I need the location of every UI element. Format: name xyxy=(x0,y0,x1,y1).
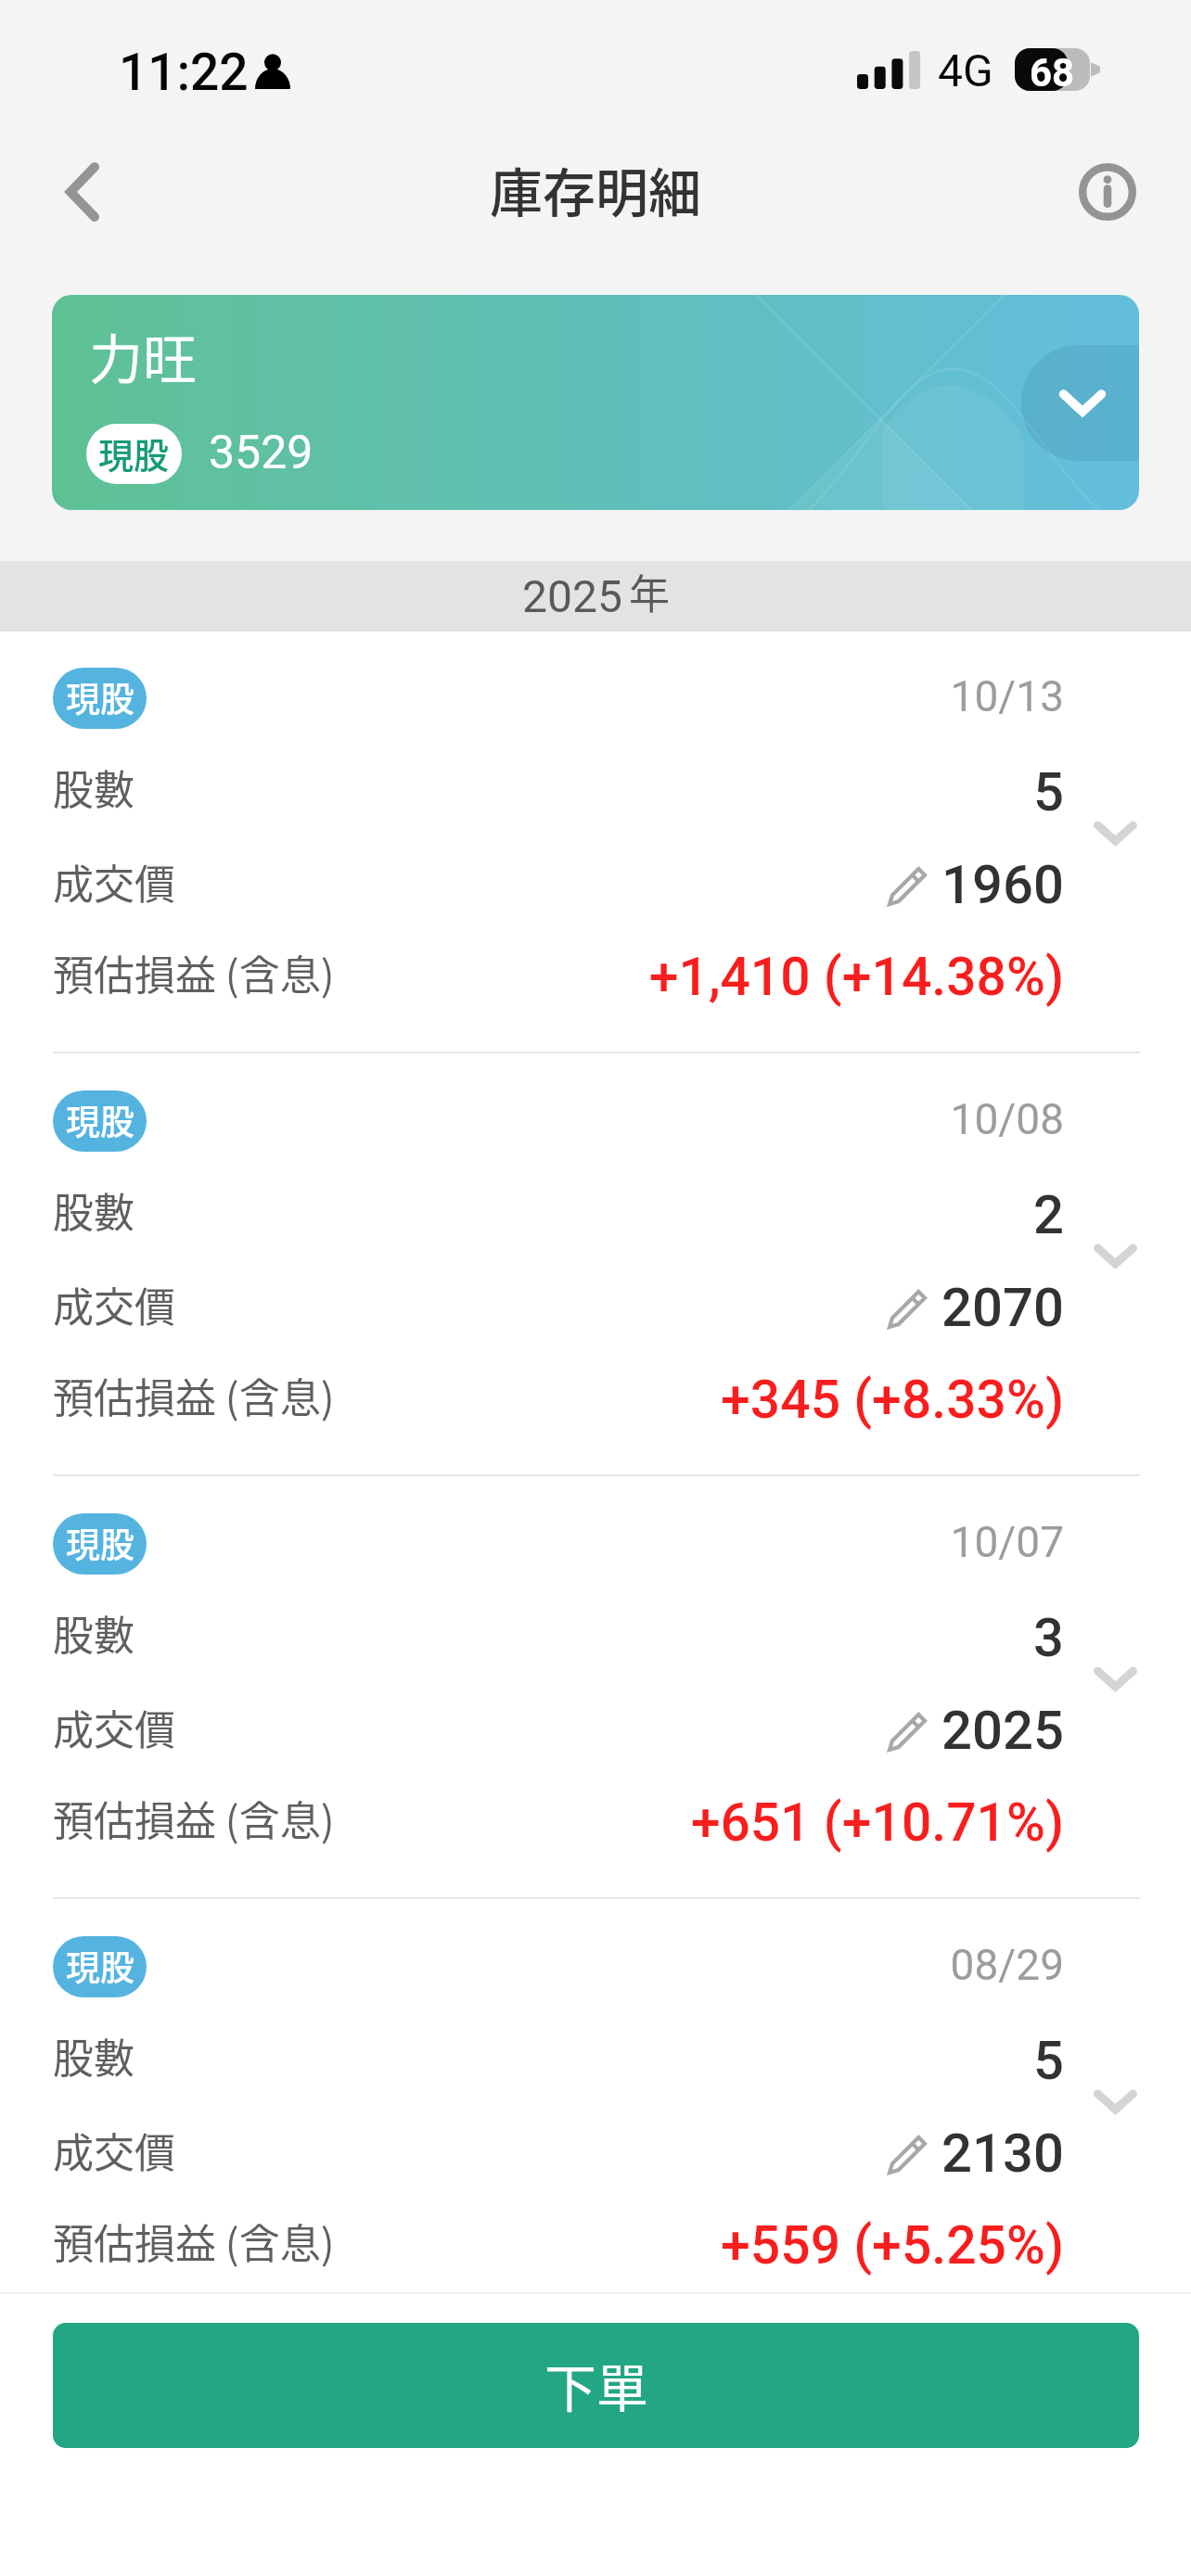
staticText: 成交價 xyxy=(53,1275,175,1334)
staticText: 11:22 xyxy=(119,43,249,102)
staticText: 預估損益 (含息) xyxy=(53,943,335,1002)
staticText: 股數 xyxy=(53,1603,134,1663)
button[interactable]: Expand xyxy=(1021,345,1139,461)
staticText: 3 xyxy=(649,1606,1064,1669)
button[interactable]: 現股 xyxy=(53,1936,147,1997)
staticText: 2070 xyxy=(941,1276,1064,1339)
staticText: 10/13 xyxy=(649,671,1064,721)
staticText: 2025 xyxy=(522,570,622,622)
staticText: 力旺 xyxy=(89,317,198,395)
staticText: 股數 xyxy=(53,2026,134,2085)
staticText: +651 (+10.71%) xyxy=(519,1792,1064,1854)
button[interactable]: Expand record xyxy=(1078,796,1152,870)
staticText: 5 xyxy=(649,760,1064,823)
staticText: 股數 xyxy=(53,758,134,817)
staticText: 08/29 xyxy=(649,1940,1064,1990)
staticText: 2025 xyxy=(941,1699,1064,1762)
staticText: 現股 xyxy=(98,427,170,478)
button[interactable]: Expand record xyxy=(1078,1218,1152,1293)
staticText: 年 xyxy=(629,562,670,621)
staticText: 股數 xyxy=(53,1180,134,1240)
button[interactable]: Information xyxy=(1066,150,1149,234)
staticText: 現股 xyxy=(66,1095,134,1145)
staticText: +345 (+8.33%) xyxy=(519,1369,1064,1431)
staticText: 68 xyxy=(1030,50,1075,93)
staticText: 現股 xyxy=(66,1941,134,1991)
staticText: 10/08 xyxy=(649,1094,1064,1144)
button[interactable]: 下單 xyxy=(53,2323,1139,2448)
button[interactable]: Expand record xyxy=(1078,1641,1152,1715)
staticText: 下單 xyxy=(544,2347,648,2422)
staticText: 2 xyxy=(649,1183,1064,1246)
staticText: 預估損益 (含息) xyxy=(53,1366,335,1425)
staticText: 成交價 xyxy=(53,1698,175,1757)
button[interactable]: 現股 xyxy=(53,1090,147,1152)
staticText: 現股 xyxy=(66,1518,134,1568)
button[interactable]: 現股 xyxy=(53,1513,147,1575)
button[interactable]: 力旺 xyxy=(52,295,1139,510)
staticText: 10/07 xyxy=(649,1517,1064,1567)
staticText: +559 (+5.25%) xyxy=(519,2214,1064,2276)
staticText: 成交價 xyxy=(53,2121,175,2180)
staticText: 3529 xyxy=(209,426,314,480)
staticText: 成交價 xyxy=(53,852,175,912)
staticText: 庫存明細 xyxy=(0,151,1191,228)
staticText: 現股 xyxy=(66,672,134,722)
button[interactable]: Back xyxy=(41,150,124,234)
staticText: +1,410 (+14.38%) xyxy=(519,946,1064,1008)
staticText: 5 xyxy=(649,2029,1064,2092)
button[interactable]: 現股 xyxy=(53,668,147,729)
staticText: 4G xyxy=(938,45,993,96)
button[interactable]: Expand record xyxy=(1078,2064,1152,2138)
staticText: 預估損益 (含息) xyxy=(53,1789,335,1848)
staticText: 2130 xyxy=(941,2122,1064,2185)
staticText: 1960 xyxy=(941,853,1064,916)
staticText: 預估損益 (含息) xyxy=(53,2212,335,2271)
